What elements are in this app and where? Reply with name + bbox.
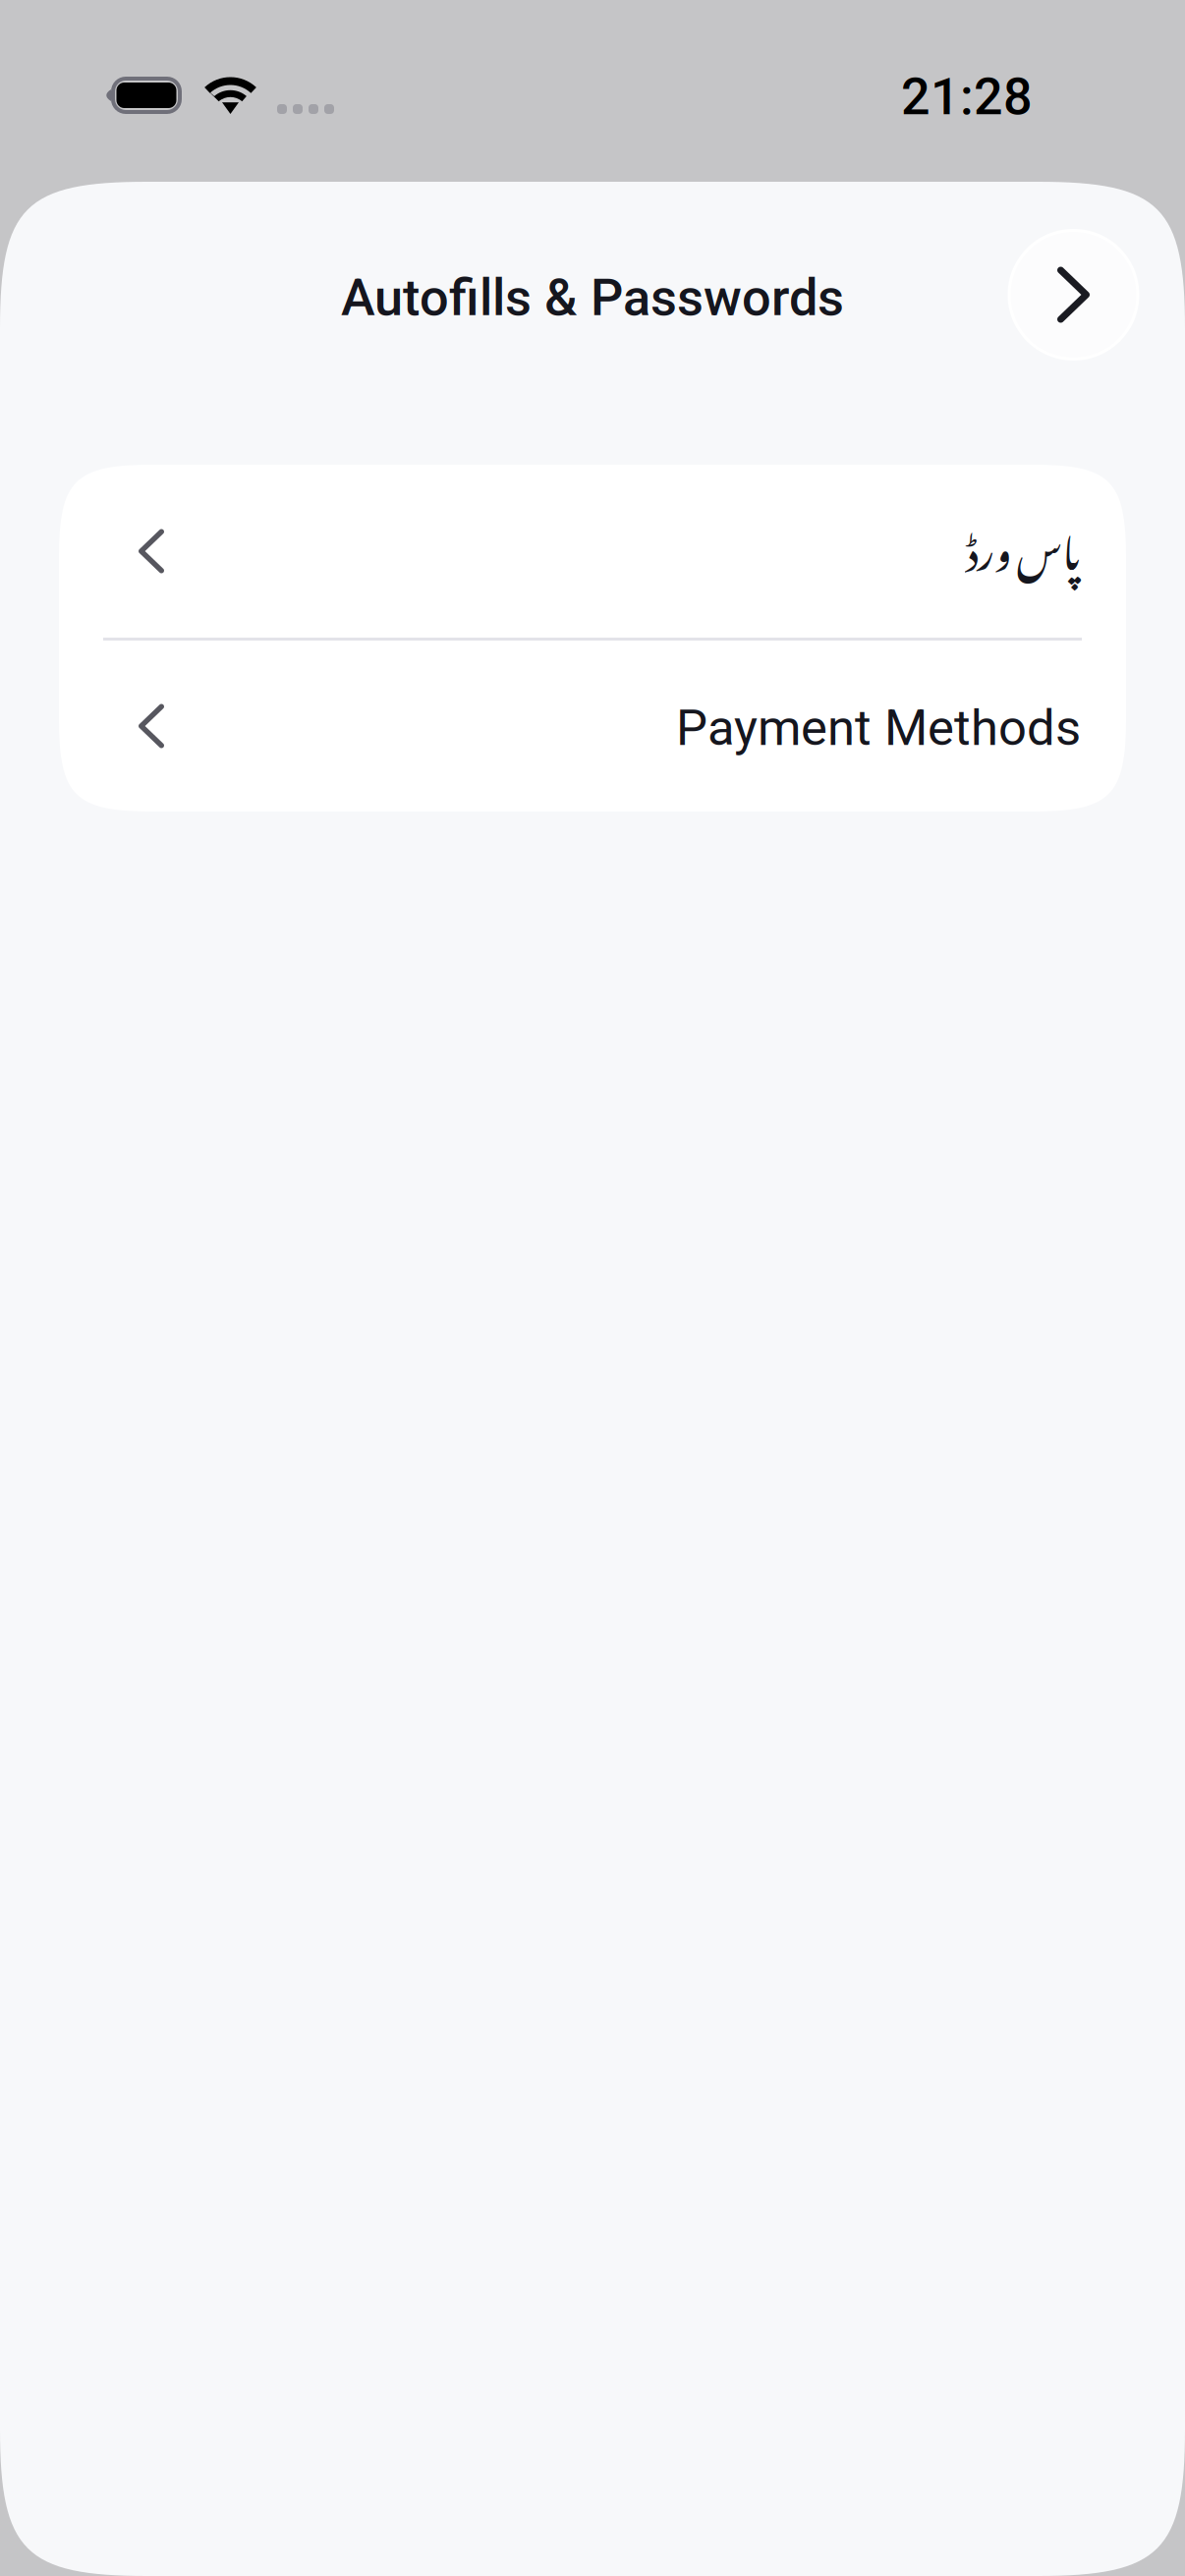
staticText: Payment Methods [676, 699, 1081, 757]
staticText: پاس ورڈ [966, 493, 1081, 594]
staticText: 21:28 [901, 67, 1033, 127]
button[interactable]: پاس ورڈ [59, 465, 1126, 638]
button[interactable]: Payment Methods [59, 641, 1126, 812]
staticText: Autofills & Passwords [341, 268, 844, 328]
button[interactable]: Back [1009, 230, 1138, 359]
